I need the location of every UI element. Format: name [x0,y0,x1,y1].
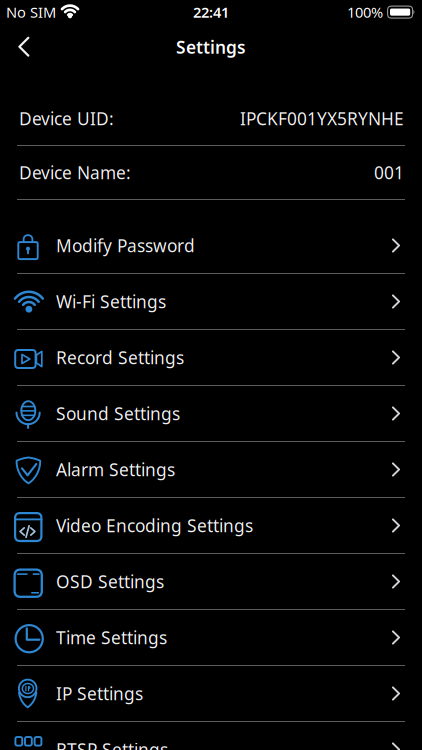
staticText: Record Settings [56,346,184,369]
staticText: Settings [176,35,246,58]
staticText: 22:41 [193,2,229,22]
staticText: Video Encoding Settings [56,514,253,537]
button[interactable]: Sound Settings [0,386,422,442]
staticText: Modify Password [56,234,195,257]
button[interactable]: Modify Password [0,218,422,274]
button[interactable]: Record Settings [0,330,422,386]
button[interactable]: Alarm Settings [0,442,422,498]
button[interactable]: IP Settings [0,666,422,722]
staticText: 100% [347,2,383,22]
staticText: IPCKF001YX5RYNHE [240,107,404,130]
button[interactable]: Wi-Fi Settings [0,274,422,330]
staticText: No SIM [6,2,56,22]
button[interactable]: RTSP Settings [0,722,422,750]
button[interactable]: Back [0,28,30,65]
staticText: Device UID: [19,107,114,130]
staticText: IP Settings [56,682,143,705]
staticText: Wi-Fi Settings [56,290,166,313]
button[interactable]: Video Encoding Settings [0,498,422,554]
staticText: 001 [374,161,404,184]
button[interactable]: OSD Settings [0,554,422,610]
staticText: OSD Settings [56,570,164,593]
staticText: Device Name: [19,161,131,184]
staticText: Sound Settings [56,402,180,425]
button[interactable]: Time Settings [0,610,422,666]
staticText: Time Settings [56,626,167,649]
staticText: RTSP Settings [56,738,168,750]
staticText: Alarm Settings [56,458,175,481]
